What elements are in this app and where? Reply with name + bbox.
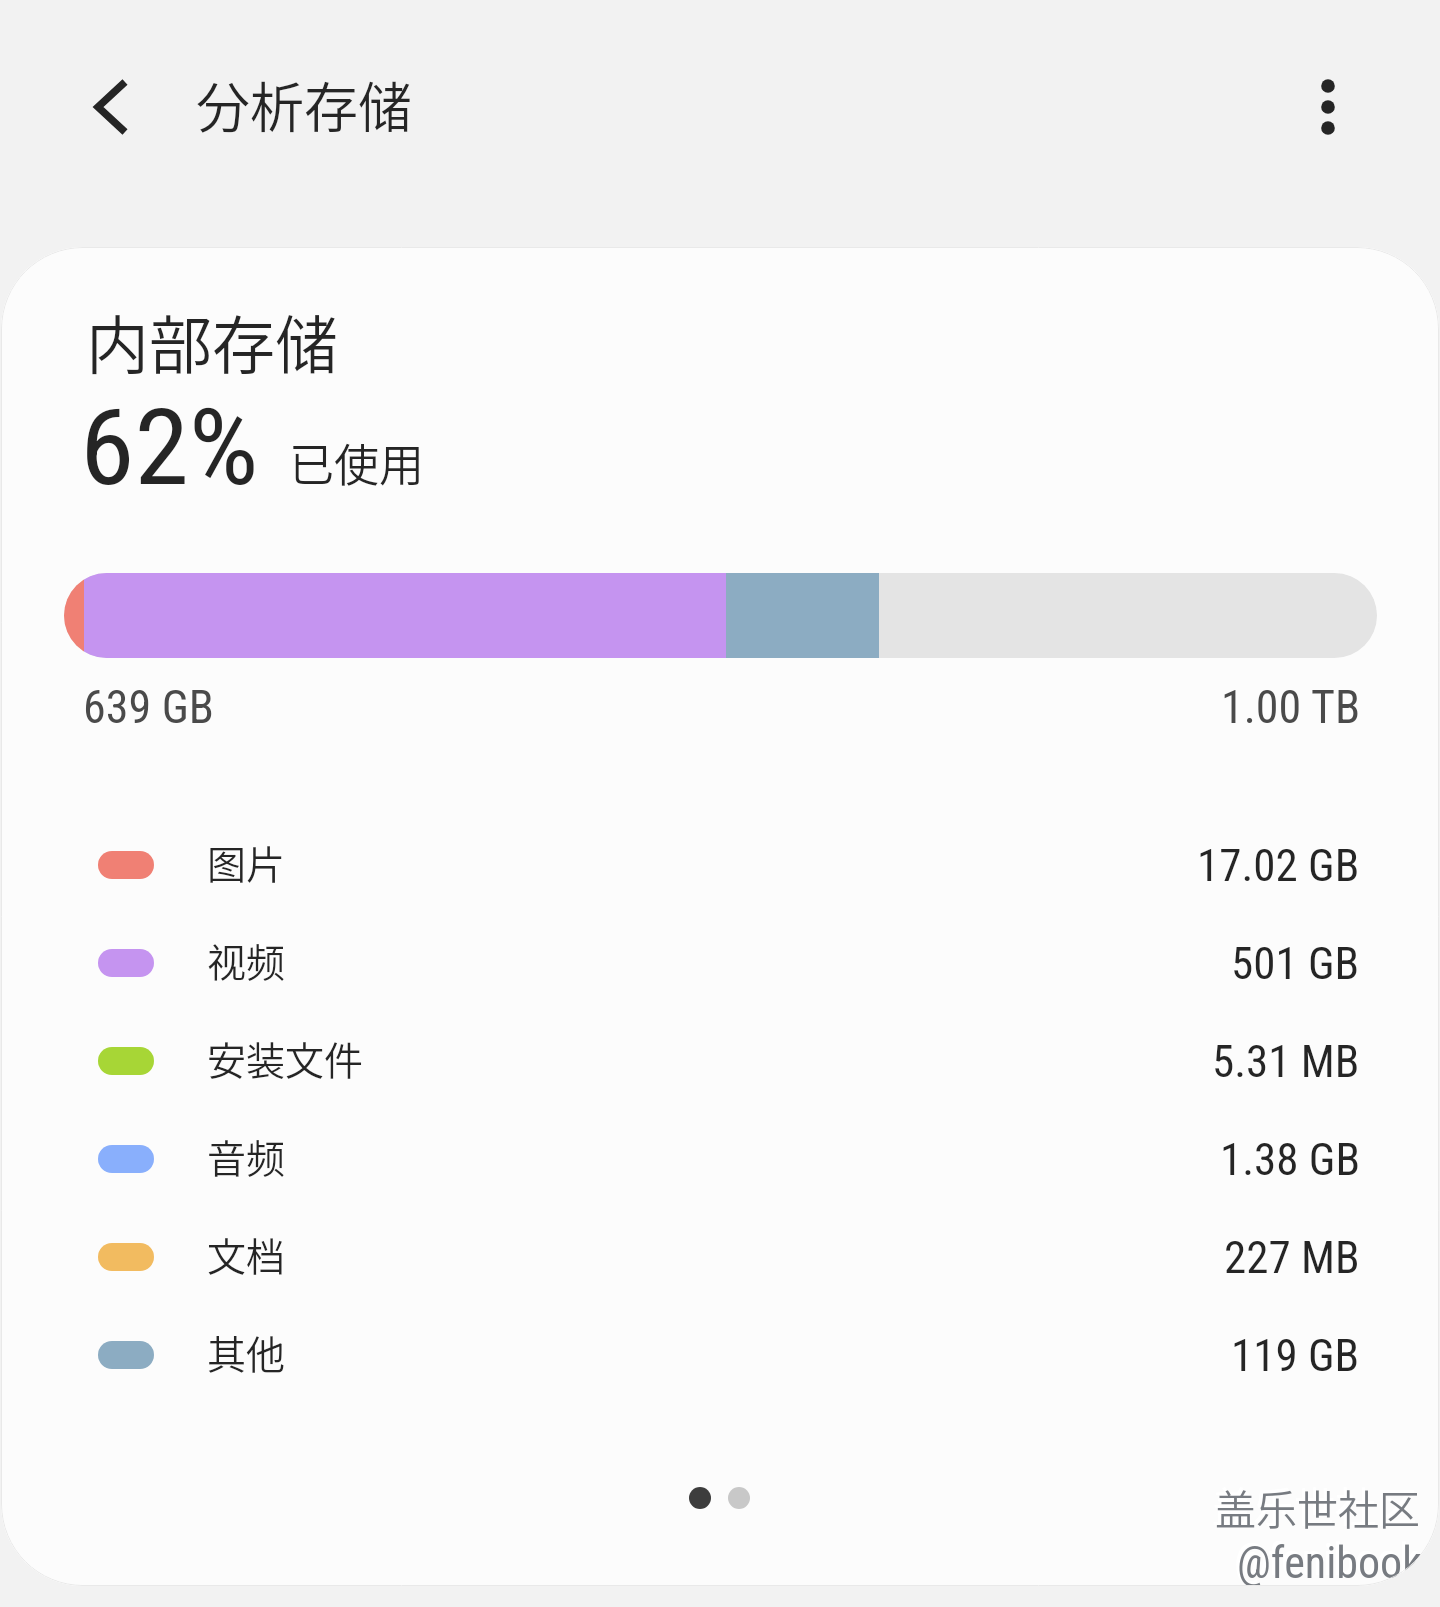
staticText: 盖乐世社区 [1212,1474,1417,1533]
staticText: 其他 [207,1324,286,1380]
staticText: @fenibook [1234,1534,1419,1586]
button[interactable]: 音频 [1,1110,1439,1208]
staticText: 已使用 [289,430,425,495]
staticText: @fenibook [1237,1537,1422,1586]
staticText: 639 GB [83,680,214,734]
staticText: 图片 [207,834,286,890]
button[interactable]: 视频 [1,914,1439,1012]
staticText: 视频 [207,932,286,988]
staticText: 17.02 GB [1197,839,1360,892]
staticText: 227 MB [1224,1231,1360,1284]
staticText: 分析存储 [196,65,412,143]
staticText: 1.38 GB [1220,1133,1360,1186]
staticText: 安装文件 [207,1030,364,1086]
staticText: 1.00 TB [1,680,1360,734]
button[interactable]: More options [1288,67,1368,147]
button[interactable]: 文档 [1,1208,1439,1306]
staticText: 内部存储 [86,295,338,386]
staticText: 119 GB [1231,1329,1360,1382]
staticText: 501 GB [1231,937,1360,990]
staticText: 5.31 MB [1212,1035,1360,1088]
staticText: 文档 [207,1226,286,1282]
staticText: 62% [80,386,259,510]
staticText: 盖乐世社区 [1215,1477,1420,1536]
button[interactable]: 安装文件 [1,1012,1439,1110]
staticText: 音频 [207,1128,286,1184]
button[interactable]: 图片 [1,816,1439,914]
button[interactable]: Back [66,67,154,155]
button[interactable]: 其他 [1,1306,1439,1404]
